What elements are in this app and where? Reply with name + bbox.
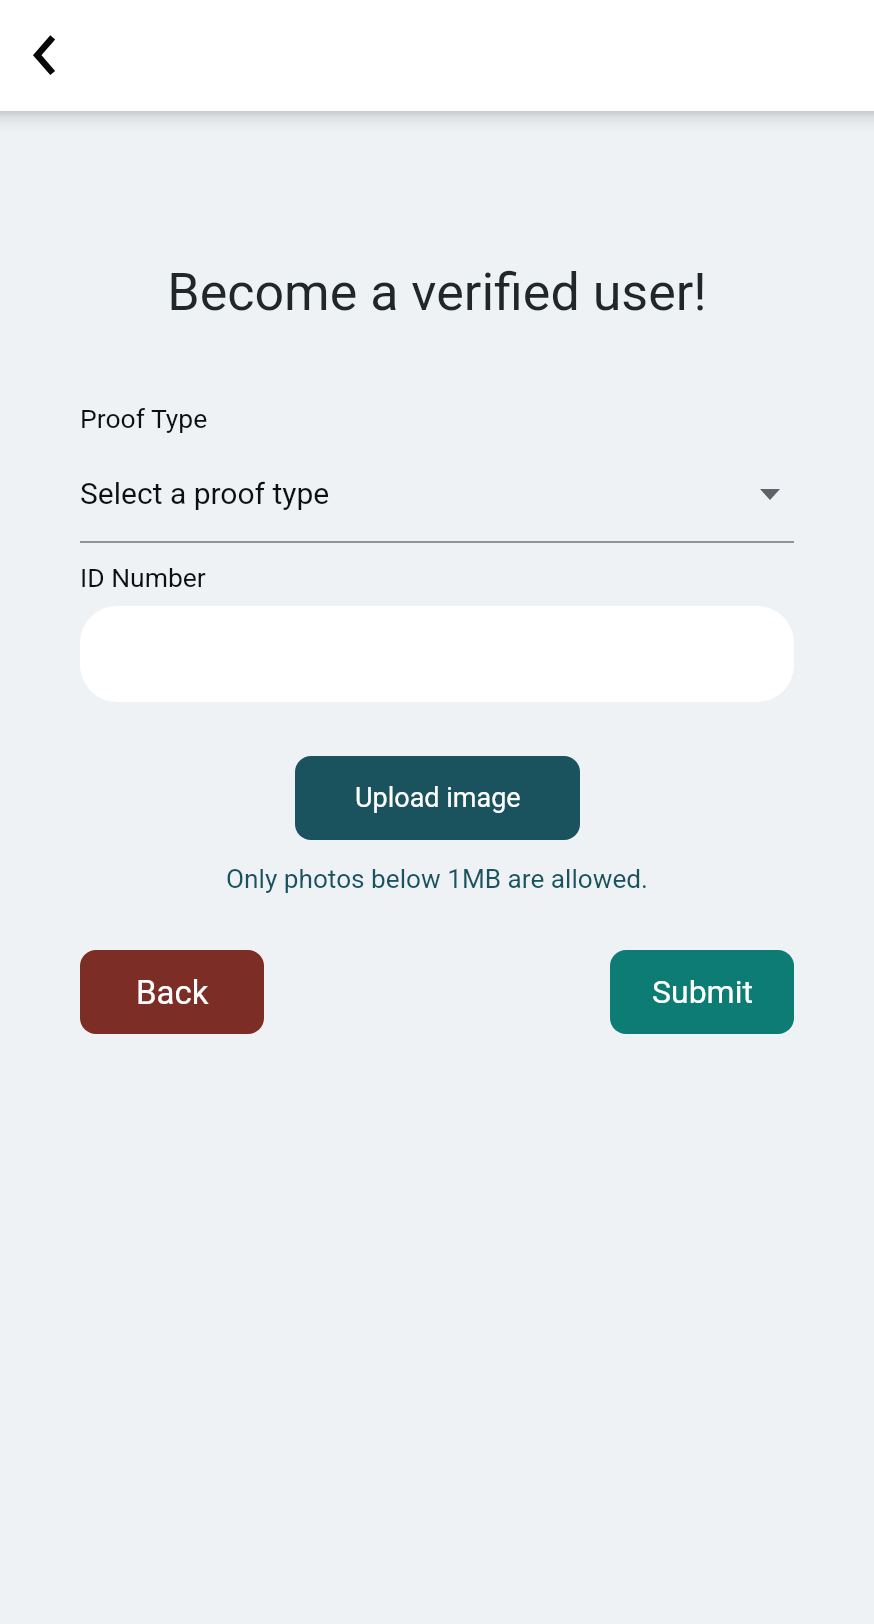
staticText: Proof Type xyxy=(80,403,208,434)
button[interactable]: Back xyxy=(12,23,76,87)
staticText: Select a proof type xyxy=(80,476,330,511)
staticText: Submit xyxy=(652,973,753,1011)
button[interactable]: Upload image xyxy=(295,756,580,840)
button[interactable]: Submit xyxy=(610,950,794,1034)
button[interactable]: Select a proof type xyxy=(80,465,794,543)
staticText: Become a verified user! xyxy=(0,262,874,323)
staticText: ID Number xyxy=(80,562,206,593)
button[interactable]: Back xyxy=(80,950,264,1034)
staticText: Back xyxy=(136,973,209,1012)
staticText: Only photos below 1MB are allowed. xyxy=(0,864,874,895)
staticText: Upload image xyxy=(355,782,521,814)
